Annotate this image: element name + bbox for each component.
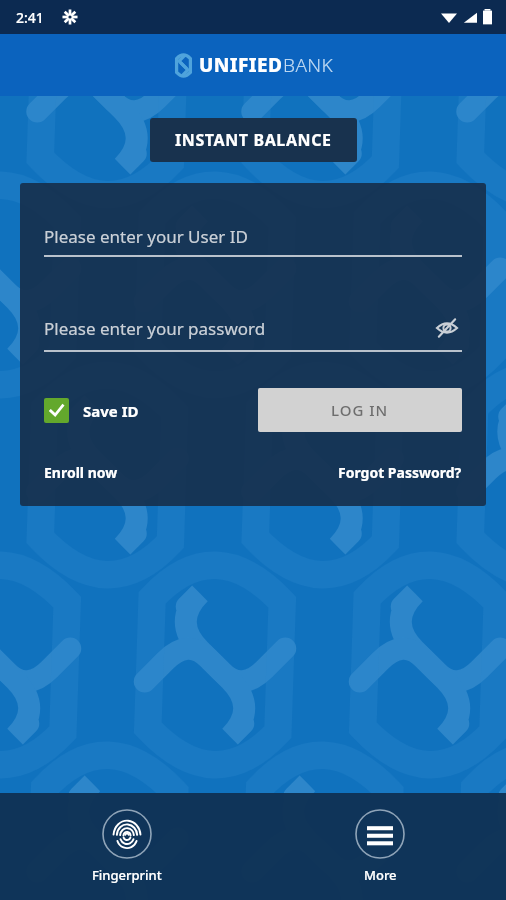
button[interactable]: LOG IN — [258, 388, 462, 432]
staticText: UNIFIED — [199, 52, 283, 78]
button[interactable]: Fingerprint login — [86, 803, 168, 890]
staticText: Enroll now — [44, 463, 118, 482]
staticText: INSTANT BALANCE — [175, 129, 332, 151]
button[interactable]: Please enter your User ID — [44, 225, 462, 257]
button[interactable]: Save ID — [44, 398, 139, 423]
staticText: Forgot Password? — [338, 463, 462, 482]
staticText: Please enter your User ID — [44, 225, 462, 248]
staticText: LOG IN — [331, 400, 389, 420]
staticText: Please enter your password — [44, 317, 432, 340]
staticText: Save ID — [83, 401, 139, 421]
button[interactable]: More options — [349, 803, 411, 890]
button[interactable]: Show password — [432, 313, 462, 343]
button[interactable]: Enroll now — [44, 463, 118, 482]
staticText: BANK — [283, 52, 334, 78]
staticText: Fingerprint — [92, 866, 162, 884]
staticText: More — [364, 866, 397, 884]
button[interactable]: Please enter your password — [44, 313, 462, 352]
staticText: 2:41 — [16, 8, 44, 27]
button[interactable]: Forgot Password? — [338, 463, 462, 482]
button[interactable]: INSTANT BALANCE — [150, 118, 357, 162]
